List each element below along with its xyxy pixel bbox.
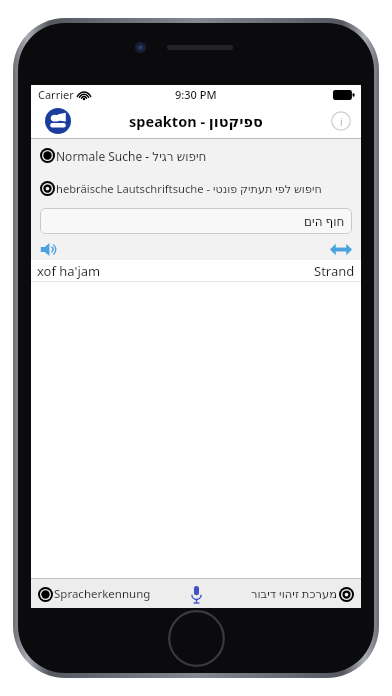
button[interactable]: חוף הים xyxy=(40,208,352,234)
button[interactable]: App home xyxy=(45,108,71,134)
staticText: 9:30 PM xyxy=(175,87,217,102)
staticText: Spracherkennung xyxy=(54,586,151,602)
staticText: מערכת זיהוי דיבור xyxy=(251,586,338,602)
button[interactable]: Swap languages xyxy=(327,239,355,259)
staticText: i xyxy=(340,114,343,129)
staticText: xof ha'jam xyxy=(37,262,101,280)
button[interactable]: Play pronunciation xyxy=(37,239,63,259)
button[interactable]: מערכת זיהוי דיבור xyxy=(251,586,354,602)
staticText: חוף הים xyxy=(304,213,345,229)
button[interactable]: Microphone xyxy=(184,582,208,606)
button[interactable]: xof ha'jam xyxy=(31,260,361,281)
staticText: speakton - ספיקטון xyxy=(129,111,263,131)
button[interactable]: Spracherkennung xyxy=(38,586,151,602)
button[interactable]: Info xyxy=(331,111,351,131)
staticText: Strand xyxy=(314,262,355,280)
staticText: hebräische Lautschriftsuche - חיפוש לפי … xyxy=(56,181,322,196)
button[interactable]: Normale Suche - חיפוש רגיל xyxy=(31,139,361,172)
staticText: Carrier xyxy=(38,87,74,102)
staticText: Normale Suche - חיפוש רגיל xyxy=(56,148,207,164)
button[interactable]: hebräische Lautschriftsuche - חיפוש לפי … xyxy=(31,172,361,205)
